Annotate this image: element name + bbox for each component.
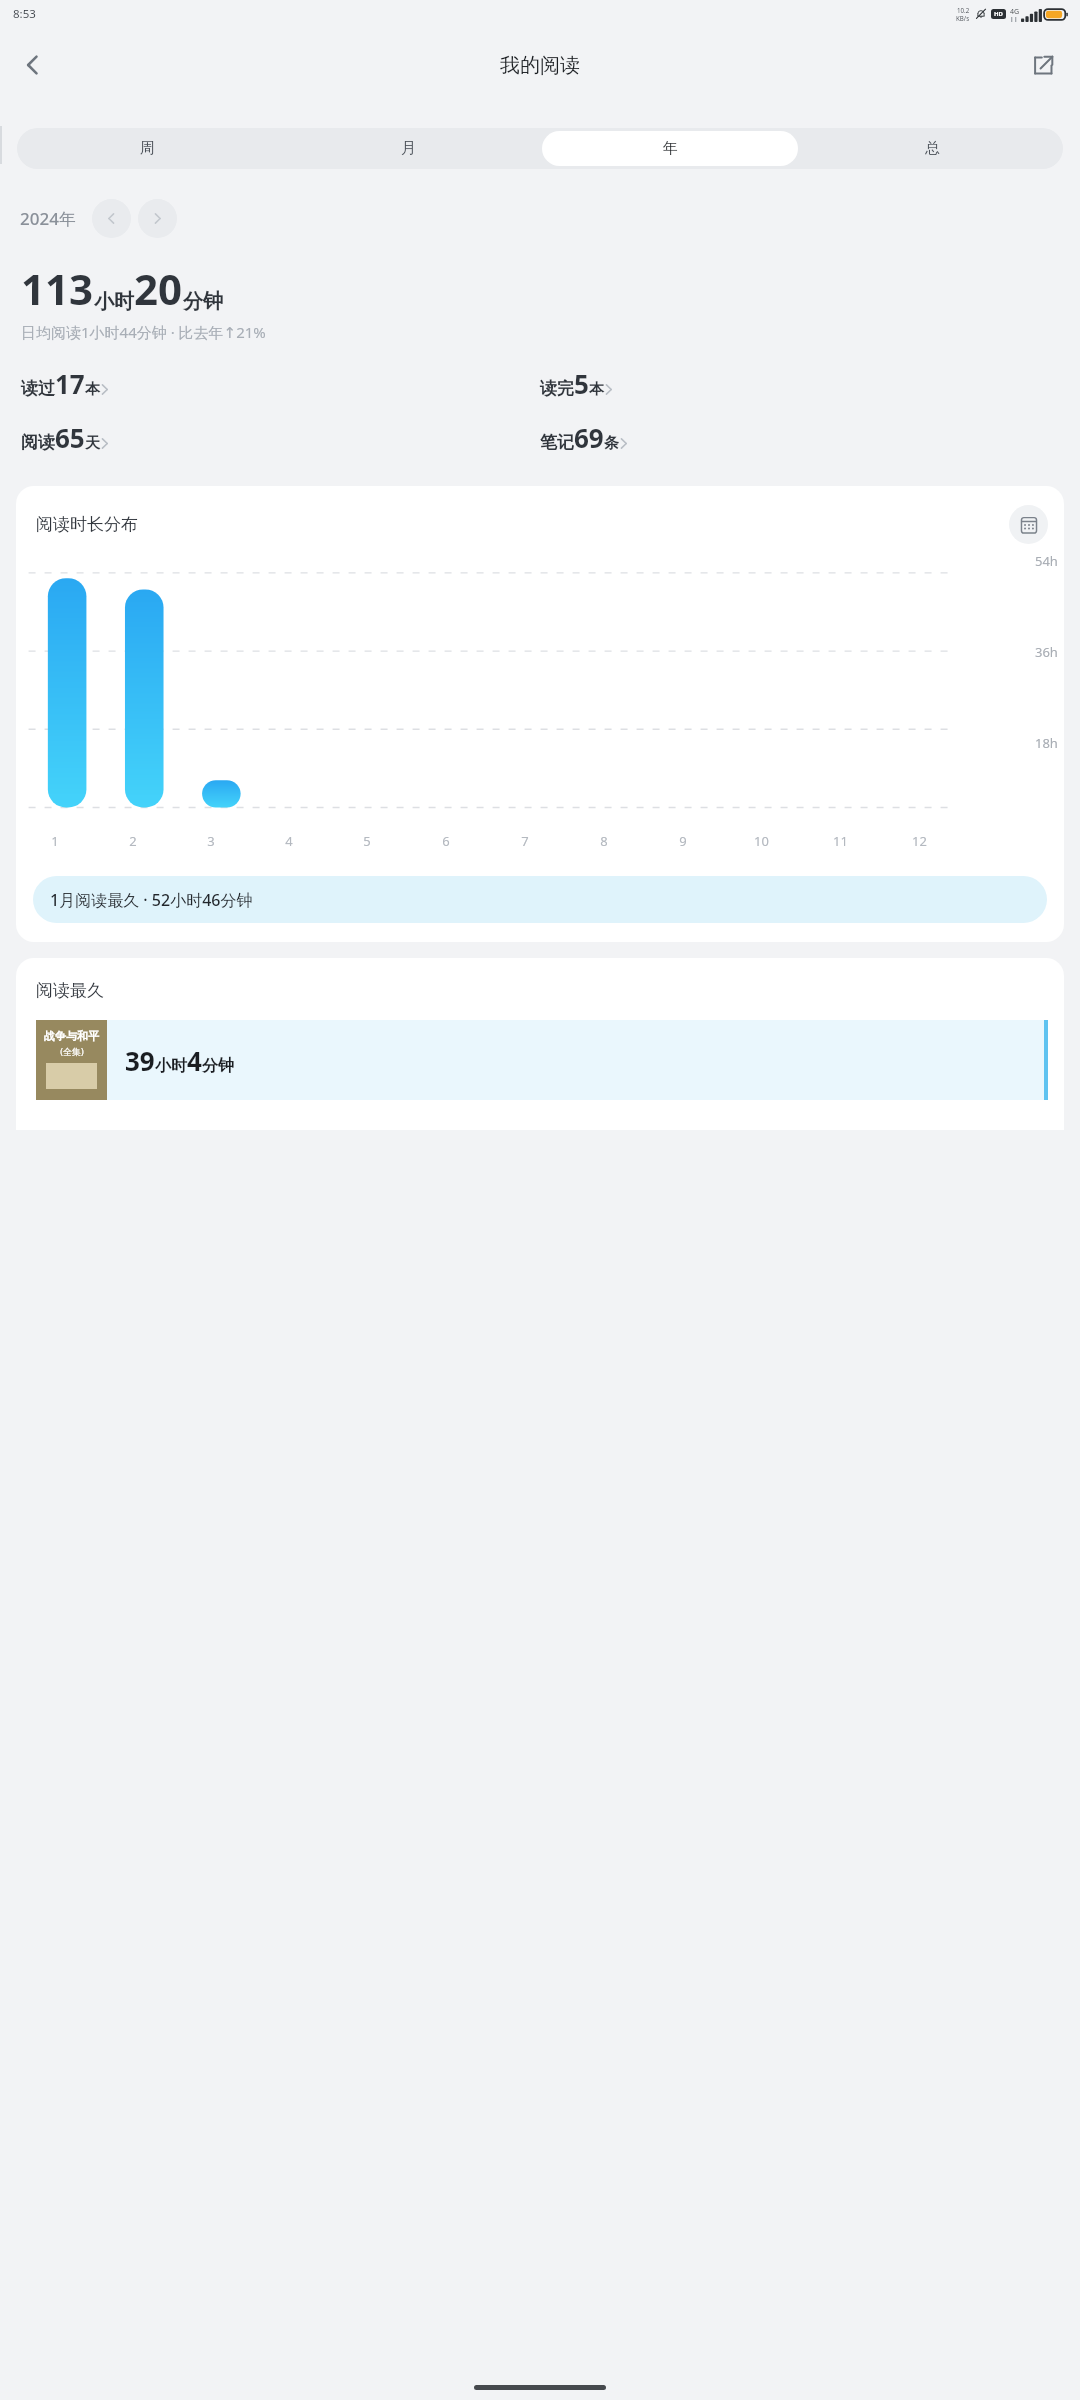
button[interactable]: 月 (281, 131, 536, 166)
button[interactable]: Share (1018, 40, 1068, 90)
staticText: 分钟 (202, 1056, 234, 1076)
staticText: 18h (1035, 734, 1058, 752)
button[interactable]: Back (6, 38, 60, 92)
staticText: 阅读 (21, 432, 55, 453)
staticText: 条 (604, 434, 619, 453)
staticText: 113 (21, 260, 94, 317)
staticText: 4G (1010, 7, 1020, 17)
staticText: (全集) (60, 1045, 84, 1057)
button[interactable]: 读过 (21, 366, 540, 401)
staticText: 1月阅读最久 · 52小时46分钟 (50, 889, 253, 911)
staticText: 36h (1035, 643, 1058, 661)
staticText: 天 (85, 434, 100, 453)
staticText: HD (994, 10, 1003, 18)
staticText: 10.2 (957, 6, 970, 14)
staticText: 10 (754, 832, 769, 850)
button[interactable]: 年 (542, 131, 798, 166)
staticText: 2 (129, 832, 137, 850)
staticText: 8 (600, 832, 608, 850)
staticText: 我的阅读 (500, 53, 580, 78)
button[interactable]: Previous year (92, 199, 131, 238)
staticText: 9 (679, 832, 687, 850)
button[interactable]: 读完 (540, 366, 1059, 401)
staticText: 小时 (94, 289, 134, 314)
staticText: 日均阅读1小时44分钟 · 比去年↑21% (21, 322, 266, 342)
staticText: 本 (589, 380, 604, 399)
staticText: 69 (574, 420, 604, 455)
staticText: 1 (51, 832, 59, 850)
staticText: 5 (574, 366, 589, 401)
staticText: 月 (401, 139, 416, 158)
button[interactable]: Next year (138, 199, 177, 238)
staticText: 11 (833, 832, 848, 850)
staticText: 4 (285, 832, 293, 850)
staticText: 7 (521, 832, 529, 850)
button[interactable]: Calendar (1009, 505, 1048, 544)
staticText: 12 (912, 832, 927, 850)
staticText: 战争与和平 (44, 1029, 99, 1043)
staticText: 本 (85, 380, 100, 399)
staticText: 分钟 (183, 289, 223, 314)
button[interactable]: 战争与和平 (36, 1020, 1048, 1100)
staticText: 总 (925, 139, 940, 158)
staticText: 阅读时长分布 (36, 514, 138, 535)
staticText: 65 (55, 420, 85, 455)
staticText: 20 (134, 260, 183, 317)
button[interactable]: 总 (804, 131, 1060, 166)
staticText: 3 (207, 832, 215, 850)
staticText: 4 (187, 1043, 202, 1078)
staticText: 54h (1035, 552, 1058, 570)
staticText: 8:53 (13, 6, 36, 22)
staticText: 17 (55, 366, 85, 401)
staticText: 笔记 (540, 432, 574, 453)
staticText: 年 (663, 139, 678, 158)
staticText: 阅读最久 (36, 980, 104, 1001)
button[interactable]: 笔记 (540, 420, 1059, 455)
staticText: 6 (442, 832, 450, 850)
staticText: KB/s (956, 14, 970, 22)
staticText: 小时 (155, 1056, 187, 1076)
button[interactable]: 阅读 (21, 420, 540, 455)
staticText: 2024年 (20, 207, 76, 230)
staticText: 读完 (540, 378, 574, 399)
staticText: 读过 (21, 378, 55, 399)
staticText: 39 (125, 1043, 155, 1078)
button[interactable]: 周 (20, 131, 275, 166)
staticText: 5 (363, 832, 371, 850)
staticText: 周 (140, 139, 155, 158)
